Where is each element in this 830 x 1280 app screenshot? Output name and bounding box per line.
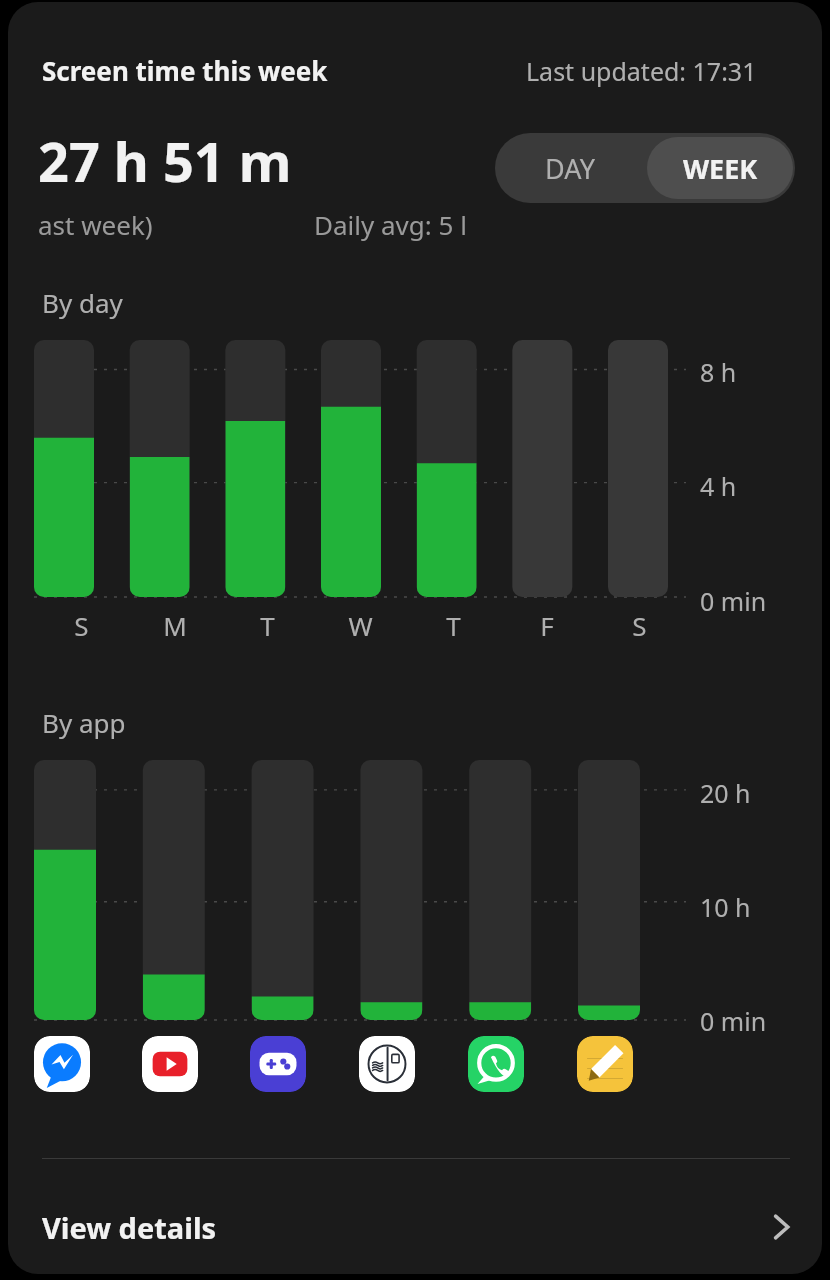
staticText: DAY [545,150,596,187]
button[interactable]: View details [8,1182,822,1272]
staticText: F [540,608,554,643]
staticText: M [163,608,187,643]
staticText: 8 h [700,355,737,389]
staticText: By app [42,705,126,740]
staticText: W [348,608,373,643]
staticText: 4 h [700,469,737,503]
button[interactable]: Samsung Notes [577,1036,633,1092]
button[interactable]: Game Launcher [250,1036,306,1092]
button[interactable]: Sketch app [359,1036,415,1092]
staticText: By day [42,285,123,320]
staticText: T [446,608,461,643]
button[interactable] [34,332,686,607]
button[interactable] [34,752,686,1030]
staticText: Last updated: 17:31 [526,54,757,88]
staticText: ast week) [38,207,153,242]
staticText: 0 min [700,1004,767,1038]
button[interactable]: Messenger [34,1036,90,1092]
staticText: 0 min [700,584,767,618]
staticText: S [74,608,89,643]
staticText: WEEK [683,150,758,187]
button[interactable]: DAY [495,133,645,203]
staticText: 20 h [700,776,751,810]
staticText: 27 h 51 m [38,124,292,198]
staticText: S [632,608,647,643]
staticText: Screen time this week [42,53,328,88]
staticText: View details [42,1208,217,1247]
button[interactable]: WhatsApp [468,1036,524,1092]
button[interactable]: YouTube [142,1036,198,1092]
staticText: Daily avg: 5 l [314,207,467,242]
button[interactable]: WEEK [647,137,793,199]
staticText: 10 h [700,890,751,924]
staticText: T [260,608,275,643]
other: View details [764,1210,798,1244]
